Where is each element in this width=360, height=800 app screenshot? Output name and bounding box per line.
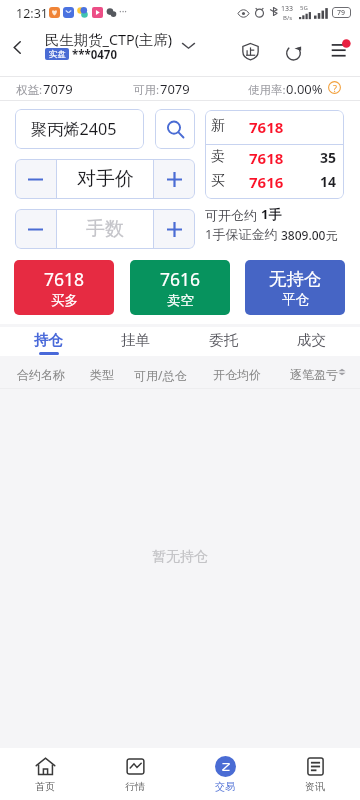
staticText: 7616: [160, 267, 201, 291]
staticText: 实盘: [49, 49, 66, 60]
staticText: 对手价: [77, 167, 134, 191]
button[interactable]: Risk control: [236, 37, 264, 65]
staticText: 手数: [86, 217, 124, 241]
button[interactable]: 无持仓: [245, 260, 345, 315]
staticText: 交易: [215, 780, 235, 793]
button[interactable]: Decrease: [15, 209, 56, 249]
staticText: 3809.00元: [281, 227, 338, 243]
button[interactable]: Increase: [154, 209, 195, 249]
staticText: 1手保证金约: [205, 225, 278, 243]
staticText: 新: [211, 117, 225, 135]
staticText: B/s: [283, 14, 293, 22]
staticText: 7616: [249, 172, 284, 192]
staticText: 卖空: [167, 292, 194, 309]
button[interactable]: 行情: [90, 748, 180, 800]
button[interactable]: 成交: [267, 327, 355, 356]
staticText: 7618: [249, 148, 284, 168]
staticText: 79: [337, 8, 346, 18]
button[interactable]: 7618: [14, 260, 114, 315]
staticText: 133: [281, 4, 294, 14]
staticText: 挂单: [121, 331, 150, 349]
button[interactable]: 持仓: [5, 327, 92, 356]
staticText: 7618: [44, 267, 85, 291]
button[interactable]: 委托: [179, 327, 267, 356]
button[interactable]: 新: [205, 110, 344, 199]
staticText: 7079: [43, 80, 73, 98]
staticText: 民生期货_CTP(主席): [45, 30, 173, 50]
button[interactable]: Refresh: [279, 38, 307, 66]
staticText: ***0470: [72, 47, 118, 63]
button[interactable]: Increase: [154, 159, 195, 199]
button[interactable]: 聚丙烯2405: [15, 109, 144, 149]
button[interactable]: Back: [3, 33, 31, 61]
button[interactable]: 首页: [0, 748, 90, 800]
button[interactable]: Search: [155, 109, 195, 149]
staticText: 逐笔盈亏: [290, 367, 338, 382]
button[interactable]: Menu: [320, 32, 354, 66]
button[interactable]: 对手价: [57, 159, 153, 199]
button[interactable]: 挂单: [92, 327, 179, 356]
staticText: 委托: [209, 331, 238, 349]
button[interactable]: 资讯: [270, 748, 360, 800]
button[interactable]: 交易: [180, 748, 270, 800]
staticText: 持仓: [34, 331, 63, 349]
staticText: 无持仓: [269, 268, 322, 290]
staticText: 平仓: [282, 291, 309, 308]
staticText: ···: [119, 4, 128, 18]
staticText: 1手: [261, 205, 282, 223]
staticText: 权益:: [16, 82, 43, 98]
staticText: 7618: [249, 117, 284, 137]
staticText: 开仓均价: [213, 367, 261, 382]
staticText: 可用:: [133, 82, 160, 98]
staticText: 12:31: [16, 5, 48, 22]
staticText: 资讯: [305, 780, 325, 793]
staticText: 可开仓约: [205, 207, 257, 223]
staticText: 可用/总仓: [134, 367, 187, 383]
staticText: 5G: [300, 4, 308, 12]
staticText: 0.00%: [286, 80, 323, 98]
staticText: 成交: [297, 331, 326, 349]
button[interactable]: Decrease: [15, 159, 56, 199]
staticText: 合约名称: [17, 367, 65, 382]
button[interactable]: Help: [328, 81, 341, 94]
button[interactable]: 手数: [57, 209, 153, 249]
staticText: 类型: [90, 367, 114, 382]
staticText: 14: [320, 172, 337, 191]
staticText: 首页: [35, 780, 55, 793]
staticText: 使用率:: [248, 82, 286, 98]
staticText: 暂无持仓: [152, 548, 208, 566]
button[interactable]: Switch account: [176, 33, 200, 57]
staticText: 买: [211, 172, 225, 190]
staticText: 行情: [125, 780, 145, 793]
button[interactable]: 7616: [130, 260, 230, 315]
staticText: 聚丙烯2405: [31, 118, 117, 140]
staticText: 卖: [211, 148, 225, 166]
staticText: ?: [333, 82, 337, 94]
staticText: 35: [320, 148, 337, 167]
staticText: 买多: [51, 292, 78, 309]
staticText: 7079: [160, 80, 190, 98]
